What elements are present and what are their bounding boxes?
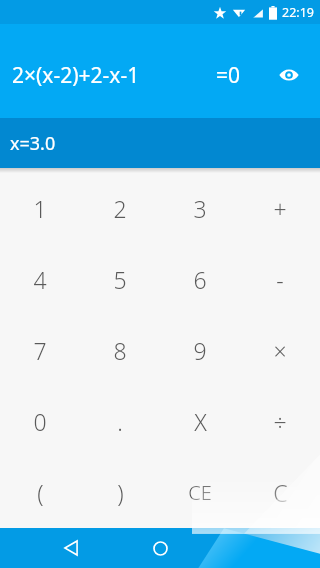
staticText: + [273, 193, 287, 224]
button[interactable]: C [240, 457, 320, 528]
button[interactable]: 5 [80, 244, 160, 315]
staticText: =0 [216, 61, 241, 90]
button[interactable]: Show solution [272, 58, 306, 92]
staticText: 1 [33, 193, 47, 224]
staticText: 6 [193, 264, 207, 295]
button[interactable]: 8 [80, 315, 160, 386]
staticText: CE [188, 479, 212, 506]
staticText: 3 [193, 193, 207, 224]
staticText: 9 [193, 335, 207, 366]
button[interactable]: ) [80, 457, 160, 528]
button[interactable]: 2 [80, 173, 160, 244]
button[interactable]: 4 [0, 244, 80, 315]
button[interactable]: ( [0, 457, 80, 528]
button[interactable]: CE [160, 457, 240, 528]
staticText: 2 [113, 193, 127, 224]
button[interactable]: + [240, 173, 320, 244]
staticText: 7 [33, 335, 47, 366]
staticText: 2×(x-2)+2-x-1 [12, 61, 140, 90]
staticText: X [194, 406, 207, 437]
button[interactable]: Back [54, 531, 88, 565]
button[interactable]: - [240, 244, 320, 315]
button[interactable]: 1 [0, 173, 80, 244]
staticText: x=3.0 [10, 131, 56, 156]
staticText: 8 [113, 335, 127, 366]
staticText: ÷ [273, 406, 287, 437]
staticText: . [117, 406, 123, 437]
staticText: 0 [33, 406, 47, 437]
button[interactable]: 0 [0, 386, 80, 457]
button[interactable]: 9 [160, 315, 240, 386]
staticText: ( [37, 477, 44, 508]
button[interactable]: 7 [0, 315, 80, 386]
staticText: 22:19 [282, 4, 314, 21]
button[interactable]: X [160, 386, 240, 457]
button[interactable]: ÷ [240, 386, 320, 457]
button[interactable]: x=3.0 [0, 118, 320, 168]
staticText: 4 [33, 264, 47, 295]
staticText: C [273, 477, 288, 508]
button[interactable]: . [80, 386, 160, 457]
button[interactable]: 3 [160, 173, 240, 244]
button[interactable]: 6 [160, 244, 240, 315]
staticText: × [273, 335, 287, 366]
button[interactable]: Home [143, 531, 177, 565]
staticText: ) [117, 477, 124, 508]
button[interactable]: × [240, 315, 320, 386]
staticText: - [276, 264, 284, 295]
staticText: 5 [113, 264, 127, 295]
